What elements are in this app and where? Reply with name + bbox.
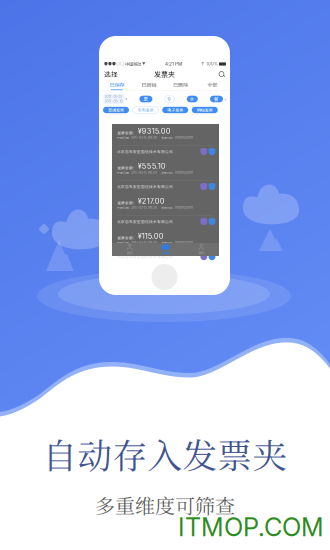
staticText: 发票夹 <box>154 69 175 79</box>
staticText: ¥115.00 <box>138 232 164 241</box>
staticText: 已报销 <box>141 81 156 88</box>
staticText: ▾ <box>125 97 127 101</box>
staticText: 发票金额： <box>117 130 137 136</box>
staticText: 开票日期 <box>117 135 129 140</box>
staticText: 北京百车安宏国信技术有限公司 <box>117 254 173 259</box>
button[interactable]: Search <box>197 68 225 80</box>
staticText: 中国移动 <box>124 61 142 67</box>
button[interactable]: 发票夹 <box>148 243 183 256</box>
button[interactable]: 专 <box>165 96 175 102</box>
staticText: 专 <box>167 96 172 102</box>
staticText: 发票夹 <box>161 250 170 255</box>
staticText: 发票金额： <box>117 165 137 171</box>
staticText: 明细发票 <box>197 107 213 113</box>
button[interactable]: 2017-01-01 <box>103 94 127 104</box>
button[interactable]: 专用发票 <box>133 107 159 113</box>
staticText: 首页 <box>127 250 133 255</box>
button[interactable]: 全部 <box>196 81 228 90</box>
staticText: ▼ <box>142 62 146 66</box>
staticText: 2017-01-01 <box>105 95 122 99</box>
staticText: 选择 <box>104 69 118 79</box>
staticText: 已删除 <box>173 81 188 88</box>
staticText: 多重维度可筛查 <box>95 490 235 519</box>
staticText: 已保存 <box>109 81 124 88</box>
staticText: 2017-03-15 09:20 <box>129 241 157 244</box>
staticText: 全部 <box>207 81 217 88</box>
staticText: 北京百车安宏国信技术有限公司 <box>117 184 173 189</box>
button[interactable]: 水 <box>187 96 198 102</box>
staticText: 发票代码 <box>157 205 173 210</box>
staticText: 专用发票 <box>138 107 154 113</box>
staticText: ●●● <box>104 61 116 67</box>
staticText: 开票日期 <box>117 170 129 175</box>
staticText: 水 <box>190 96 195 102</box>
staticText: 2017-05-10 <box>105 99 123 103</box>
button[interactable]: 已删除 <box>164 81 196 90</box>
staticText: 自动存入发票夹 <box>42 429 287 478</box>
staticText: 2017-03-15 09:20 <box>129 136 157 139</box>
staticText: 4:21 PM <box>165 61 182 67</box>
staticText: 发票代码 <box>157 135 173 140</box>
button[interactable]: 票 <box>139 96 152 102</box>
staticText: 011001500111 <box>173 241 193 244</box>
staticText: ¥9315.00 <box>138 127 171 136</box>
staticText: 电子发票 <box>167 107 183 113</box>
staticText: 普通发票 <box>108 107 124 113</box>
staticText: ↑ 100% <box>201 61 218 67</box>
staticText: 发票代码 <box>157 170 173 175</box>
button[interactable]: 选择 <box>104 68 132 80</box>
staticText: 011001500111 <box>173 206 193 209</box>
staticText: 开票日期 <box>117 240 129 245</box>
staticText: 北京百车安宏国信技术有限公司 <box>117 149 173 154</box>
staticText: 北京百车安宏国信技术有限公司 <box>117 219 173 224</box>
button[interactable]: 餐 <box>210 96 223 102</box>
staticText: ¥217.00 <box>138 197 165 206</box>
staticText: 发票金额： <box>117 235 137 241</box>
button[interactable]: 我的 <box>183 243 219 256</box>
button[interactable]: 电子发票 <box>162 107 188 113</box>
staticText: ○○ <box>116 61 124 67</box>
staticText: ITMOP.COM <box>178 512 324 542</box>
staticText: 票 <box>143 96 148 102</box>
staticText: 发票代码 <box>157 240 173 245</box>
button[interactable]: 已保存 <box>101 81 133 90</box>
staticText: 餐 <box>214 96 219 102</box>
staticText: 011001500111 <box>173 136 193 139</box>
staticText: ¥555.10 <box>138 162 166 171</box>
staticText: 我的 <box>198 250 204 255</box>
staticText: + <box>224 96 227 102</box>
button[interactable]: 已报销 <box>133 81 165 90</box>
staticText: 011001500111 <box>173 171 193 174</box>
staticText: 开票日期 <box>117 205 129 210</box>
staticText: 2017-03-15 09:20 <box>129 171 157 174</box>
button[interactable]: 普通发票 <box>103 107 129 113</box>
button[interactable]: 明细发票 <box>192 107 218 113</box>
button[interactable]: 首页 <box>112 243 148 256</box>
staticText: 2017-03-15 09:20 <box>129 206 157 209</box>
staticText: 发票金额： <box>117 200 137 206</box>
